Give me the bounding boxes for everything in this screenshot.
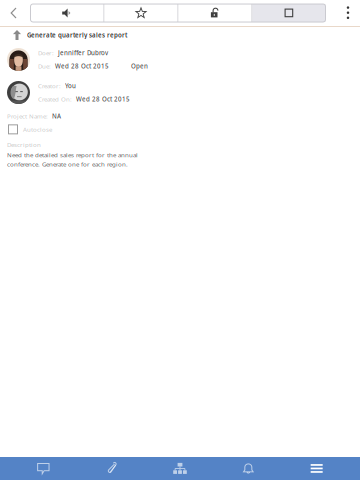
staticText: Due: bbox=[38, 62, 51, 70]
button[interactable]: Favourite bbox=[104, 4, 177, 22]
button[interactable]: Mute bbox=[30, 4, 103, 22]
staticText: Description bbox=[7, 140, 41, 149]
button[interactable]: More options bbox=[333, 0, 360, 25]
staticText: Autoclose bbox=[23, 125, 52, 134]
button[interactable]: Stop bbox=[252, 4, 325, 22]
staticText: Jenniffer Dubrov bbox=[58, 49, 108, 57]
staticText: Doer: bbox=[38, 49, 54, 57]
staticText: You bbox=[65, 82, 76, 90]
button[interactable]: Autoclose bbox=[0, 120, 52, 134]
staticText: Wed 28 Oct 2015 bbox=[55, 62, 109, 70]
button[interactable]: Attachments bbox=[87, 457, 137, 480]
staticText: Project Name: bbox=[7, 112, 48, 120]
button[interactable]: Alerts bbox=[223, 457, 273, 480]
staticText: Open bbox=[131, 62, 148, 70]
button[interactable]: Back bbox=[0, 0, 30, 25]
staticText: conference. Generate one for each region… bbox=[7, 160, 128, 168]
button[interactable]: Menu bbox=[292, 457, 342, 480]
staticText: Wed 28 Oct 2015 bbox=[76, 95, 130, 103]
staticText: NA bbox=[52, 112, 61, 120]
button[interactable]: Org chart bbox=[155, 457, 205, 480]
staticText: Need the detailed sales report for the a… bbox=[7, 151, 138, 159]
staticText: Creator: bbox=[38, 82, 61, 90]
staticText: Created On: bbox=[38, 95, 72, 103]
button[interactable]: Comments bbox=[18, 457, 68, 480]
staticText: Generate quarterly sales report bbox=[27, 31, 127, 39]
button[interactable]: Lock bbox=[178, 4, 251, 22]
